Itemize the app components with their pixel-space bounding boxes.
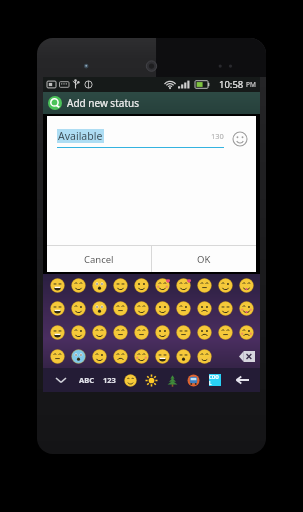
button[interactable]: Smileys bbox=[120, 368, 141, 392]
button[interactable]: Travel bbox=[183, 368, 204, 392]
button[interactable]: Emoji bbox=[68, 320, 89, 344]
staticText: 10:58 bbox=[219, 78, 244, 91]
button[interactable]: Emoji bbox=[173, 297, 194, 320]
button[interactable]: Emoji bbox=[89, 274, 110, 297]
button[interactable]: Emoji bbox=[68, 344, 89, 368]
button[interactable]: Emoji bbox=[46, 297, 68, 320]
button[interactable]: Celebration bbox=[162, 368, 183, 392]
button[interactable]: Emoji bbox=[152, 320, 173, 344]
button[interactable]: Emoji bbox=[173, 274, 194, 297]
button[interactable]: Emoji bbox=[110, 344, 131, 368]
button[interactable]: Emoji bbox=[89, 344, 110, 368]
button[interactable]: Emoji bbox=[110, 274, 131, 297]
button[interactable]: Emoji bbox=[215, 320, 236, 344]
button[interactable]: Emoji bbox=[194, 274, 215, 297]
button[interactable]: ABC bbox=[74, 368, 99, 392]
button[interactable]: Emoji bbox=[173, 344, 194, 368]
button[interactable]: Add new status bbox=[43, 92, 260, 114]
staticText: PM bbox=[246, 80, 256, 89]
staticText: OK bbox=[197, 253, 211, 266]
button[interactable]: Emoji bbox=[89, 297, 110, 320]
button[interactable]: Enter bbox=[225, 368, 256, 392]
button[interactable]: Emoji bbox=[194, 320, 215, 344]
staticText: Cancel bbox=[84, 253, 114, 266]
button[interactable]: Emoji bbox=[236, 274, 257, 297]
button[interactable]: Backspace bbox=[236, 344, 257, 368]
button[interactable]: Emoji bbox=[152, 297, 173, 320]
button[interactable]: Emoji bbox=[131, 320, 152, 344]
button[interactable]: Emoji bbox=[89, 320, 110, 344]
button[interactable]: Emoji bbox=[110, 297, 131, 320]
button[interactable]: Emoji bbox=[194, 297, 215, 320]
button[interactable]: Emoji bbox=[131, 297, 152, 320]
button[interactable]: Emoji bbox=[215, 297, 236, 320]
button[interactable]: Hide keyboard bbox=[47, 368, 74, 392]
button[interactable]: Emoji bbox=[68, 274, 89, 297]
staticText: COOL bbox=[209, 374, 221, 386]
staticText: ABC bbox=[79, 375, 94, 385]
button[interactable]: Emoji bbox=[110, 320, 131, 344]
staticText: 130 bbox=[211, 131, 224, 141]
staticText: Available bbox=[58, 129, 103, 143]
button[interactable]: Emoji bbox=[194, 344, 215, 368]
button[interactable]: Emoji bbox=[68, 297, 89, 320]
button[interactable]: Symbols bbox=[204, 368, 225, 392]
button[interactable]: Emoji bbox=[46, 274, 68, 297]
button[interactable]: Emoji bbox=[236, 320, 257, 344]
button[interactable]: Emoji bbox=[152, 344, 173, 368]
button[interactable]: Emoji bbox=[232, 131, 248, 147]
button[interactable]: Emoji bbox=[215, 274, 236, 297]
button[interactable]: Emoji bbox=[46, 320, 68, 344]
staticText: 123 bbox=[103, 375, 116, 385]
button[interactable]: Emoji bbox=[152, 274, 173, 297]
button[interactable]: OK bbox=[152, 246, 256, 272]
button[interactable]: Cancel bbox=[47, 246, 151, 272]
button[interactable]: Emoji bbox=[236, 297, 257, 320]
button[interactable] bbox=[215, 344, 236, 368]
staticText: Add new status bbox=[67, 96, 139, 110]
button[interactable]: 123 bbox=[99, 368, 120, 392]
button[interactable]: Emoji bbox=[131, 274, 152, 297]
button[interactable]: Nature bbox=[141, 368, 162, 392]
button[interactable]: Emoji bbox=[131, 344, 152, 368]
button[interactable]: Emoji bbox=[46, 344, 68, 368]
button[interactable]: Emoji bbox=[173, 320, 194, 344]
